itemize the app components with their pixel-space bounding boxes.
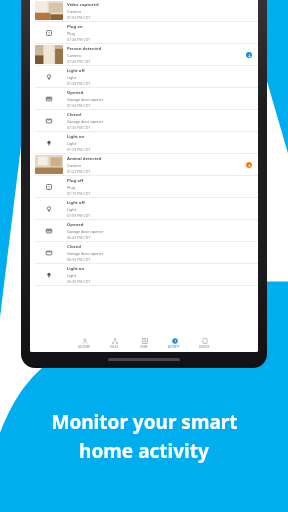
staticText: Closed [67,112,81,118]
staticText: Plug on [67,24,83,30]
staticText: 07:29 PM CDT [67,147,91,152]
button[interactable]: Light on [30,264,258,286]
button[interactable]: Light on [30,132,258,154]
staticText: Garage door opener [67,251,104,256]
staticText: 06:30 PM CDT [67,279,91,284]
staticText: Light off [67,200,85,206]
button[interactable]: Closed [30,110,258,132]
staticText: Closed [67,244,81,250]
staticText: Light [67,75,77,80]
staticText: 06:42 PM CDT [67,235,91,240]
staticText: Person detected [67,46,102,52]
button[interactable]: Opened [30,88,258,110]
staticText: DEVICES [199,345,210,349]
staticText: 07:19 PM CDT [67,191,91,196]
button[interactable]: Plug on [30,22,258,44]
staticText: Light [67,273,77,278]
staticText: Light [67,141,77,146]
button[interactable]: ACCOUNT [69,334,99,352]
staticText: 07:45 PM CDT [67,59,91,64]
button[interactable]: ACTIVITY [159,334,189,352]
button[interactable]: HOME [129,334,159,352]
button[interactable]: Closed [30,242,258,264]
staticText: ACCOUNT [78,345,91,349]
staticText: Light on [67,266,85,272]
button[interactable]: Plug off [30,176,258,198]
button[interactable]: Animal detected [30,154,258,176]
staticText: 06:36 PM CDT [67,257,91,262]
staticText: Animal detected [67,156,102,162]
staticText: 07:22 PM CDT [67,169,91,174]
staticText: ACTIVITY [168,345,180,349]
staticText: Garage door opener [67,119,104,124]
staticText: 07:56 PM CDT [67,15,91,20]
staticText: Garage door opener [67,229,104,234]
button[interactable]: Video captured [30,0,258,22]
button[interactable]: Opened [30,220,258,242]
button[interactable]: Light off [30,198,258,220]
staticText: 07:30 PM CDT [67,125,91,130]
button[interactable]: RULES [99,334,129,352]
staticText: Plug off [67,178,84,184]
staticText: Light off [67,68,85,74]
button[interactable]: DEVICES [189,334,219,352]
staticText: Light on [67,134,85,140]
staticText: Plug [67,185,75,190]
staticText: Camera [67,163,81,168]
staticText: home activity [79,438,209,464]
button[interactable]: Person detected [30,44,258,66]
staticText: Monitor your smart [51,409,238,435]
staticText: Plug [67,31,75,36]
staticText: Camera [67,9,81,14]
staticText: HOME [140,345,148,349]
staticText: 07:38 PM CDT [67,81,91,86]
staticText: 07:09 PM CDT [67,213,91,218]
staticText: Opened [67,90,84,96]
staticText: Light [67,207,77,212]
staticText: Video captured [67,2,99,8]
staticText: Camera [67,53,81,58]
staticText: RULES [110,345,118,349]
button[interactable]: Light off [30,66,258,88]
staticText: Opened [67,222,84,228]
staticText: 07:48 PM CDT [67,37,91,42]
staticText: 07:34 PM CDT [67,103,91,108]
staticText: Garage door opener [67,97,104,102]
